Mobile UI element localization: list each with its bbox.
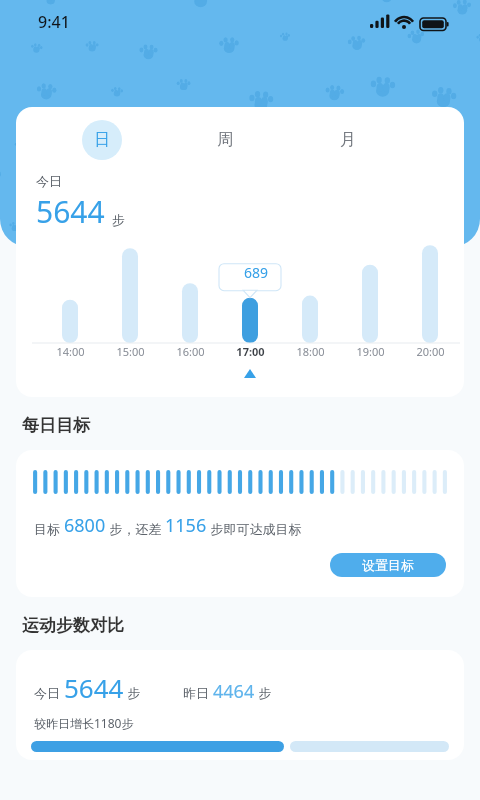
staticText: 今日: [36, 173, 62, 189]
staticText: 5644: [64, 670, 124, 705]
button[interactable]: 周: [205, 120, 245, 160]
staticText: 15:00: [116, 344, 145, 359]
staticText: 步: [255, 684, 272, 702]
staticText: 17:00: [236, 344, 265, 359]
staticText: 19:00: [356, 344, 385, 359]
staticText: 月: [340, 130, 356, 150]
staticText: 16:00: [176, 344, 205, 359]
staticText: 周: [217, 130, 233, 150]
staticText: 6800: [64, 513, 106, 538]
staticText: 每日目标: [22, 415, 90, 436]
staticText: 18:00: [296, 344, 325, 359]
button[interactable]: 日: [82, 120, 122, 160]
staticText: 689: [244, 263, 269, 282]
staticText: 20:00: [416, 344, 445, 359]
staticText: 步: [124, 684, 141, 702]
staticText: 运动步数对比: [22, 615, 124, 636]
staticText: 步: [112, 212, 125, 228]
button[interactable]: 月: [328, 120, 368, 160]
staticText: 步，还差: [106, 520, 165, 538]
button[interactable]: 设置目标: [330, 553, 446, 577]
staticText: 昨日: [183, 684, 213, 702]
staticText: 今日: [34, 684, 64, 702]
staticText: 步即可达成目标: [207, 520, 302, 538]
staticText: 目标: [34, 520, 64, 538]
staticText: 5644: [36, 191, 105, 232]
staticText: 设置目标: [362, 557, 414, 573]
staticText: 9:41: [38, 11, 70, 33]
staticText: 较昨日增长1180步: [34, 715, 134, 731]
staticText: 14:00: [56, 344, 85, 359]
staticText: 日: [94, 130, 110, 150]
staticText: 4464: [213, 679, 255, 704]
staticText: 1156: [165, 513, 207, 538]
